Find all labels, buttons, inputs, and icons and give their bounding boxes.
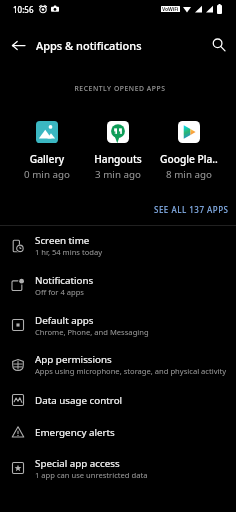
staticText: Data usage control xyxy=(35,394,123,407)
button[interactable]: Google Pla.. xyxy=(154,121,224,181)
button[interactable]: Data usage control xyxy=(0,384,236,416)
staticText: Gallery xyxy=(12,152,82,166)
staticText: Notifications xyxy=(35,274,94,287)
button[interactable]: Notifications xyxy=(0,265,236,305)
button[interactable]: Default apps xyxy=(0,305,236,345)
button[interactable]: Back xyxy=(4,31,32,59)
staticText: 1 hr, 54 mins today xyxy=(35,247,103,257)
staticText: 8 min ago xyxy=(154,168,224,181)
button[interactable]: Emergency alerts xyxy=(0,416,236,448)
staticText: 0 min ago xyxy=(12,168,82,181)
staticText: RECENTLY OPENED APPS xyxy=(4,84,236,93)
staticText: 10:56 xyxy=(13,4,34,15)
staticText: Apps using microphone, storage, and phys… xyxy=(35,366,227,376)
button[interactable]: Screen time xyxy=(0,226,236,265)
staticText: Off for 4 apps xyxy=(35,287,85,297)
staticText: Screen time xyxy=(35,234,90,247)
staticText: Special app access xyxy=(35,457,120,470)
button[interactable]: Special app access xyxy=(0,448,236,488)
staticText: Hangouts xyxy=(83,152,153,166)
staticText: 1 app can use unrestricted data xyxy=(35,470,148,480)
button[interactable]: App permissions xyxy=(0,345,236,384)
staticText: Chrome, Phone, and Messaging xyxy=(35,327,149,337)
button[interactable]: Hangouts xyxy=(83,121,153,181)
staticText: App permissions xyxy=(35,353,112,366)
staticText: 3 min ago xyxy=(83,168,153,181)
staticText: Apps & notifications xyxy=(36,38,142,53)
staticText: Emergency alerts xyxy=(35,426,115,439)
staticText: Google Pla.. xyxy=(154,152,224,166)
staticText: Default apps xyxy=(35,314,94,327)
button[interactable]: Gallery xyxy=(12,121,82,181)
button[interactable]: SEE ALL 137 APPS xyxy=(147,200,236,219)
button[interactable]: Search xyxy=(205,31,233,59)
staticText: VoWiFi xyxy=(162,6,179,12)
